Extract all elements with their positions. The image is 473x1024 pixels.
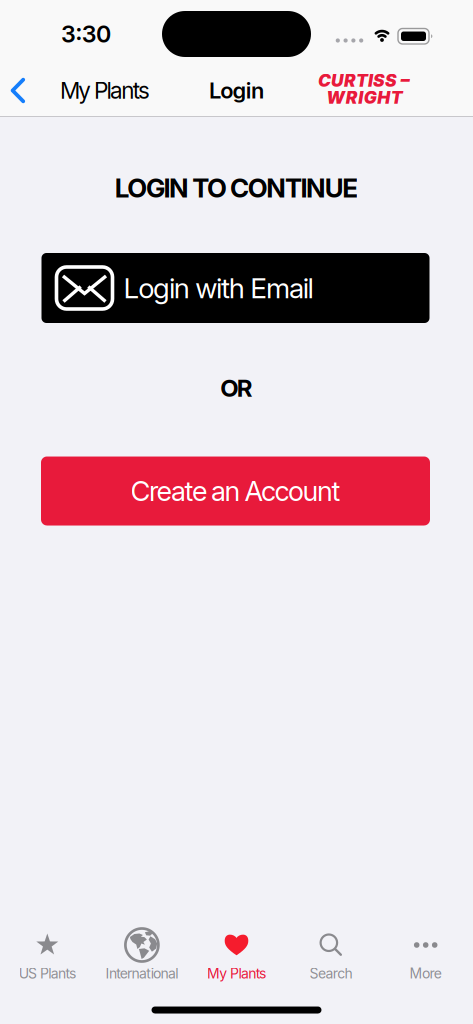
- button[interactable]: Search: [284, 930, 378, 986]
- button[interactable]: Create an Account: [41, 456, 430, 525]
- button[interactable]: Login with Email: [41, 253, 429, 323]
- button[interactable]: Curtiss-Wright: [318, 70, 411, 108]
- staticText: Search: [310, 965, 353, 982]
- button[interactable]: International: [95, 930, 189, 986]
- staticText: 3:30: [61, 20, 111, 48]
- button[interactable]: My Plants: [189, 930, 284, 986]
- button[interactable]: US Plants: [0, 930, 95, 986]
- staticText: My Plants: [60, 77, 150, 104]
- button[interactable]: Back to My Plants: [0, 62, 170, 117]
- button[interactable]: More: [378, 930, 473, 986]
- staticText: US Plants: [19, 965, 76, 982]
- staticText: Login: [209, 77, 264, 104]
- staticText: More: [410, 965, 442, 982]
- staticText: LOGIN TO CONTINUE: [115, 172, 358, 204]
- staticText: My Plants: [207, 965, 266, 982]
- staticText: Login with Email: [123, 271, 313, 305]
- staticText: International: [105, 965, 178, 982]
- staticText: WRIGHT: [326, 87, 403, 108]
- staticText: Create an Account: [130, 474, 340, 508]
- staticText: OR: [220, 373, 253, 402]
- staticText: CURTISS −: [318, 70, 411, 91]
